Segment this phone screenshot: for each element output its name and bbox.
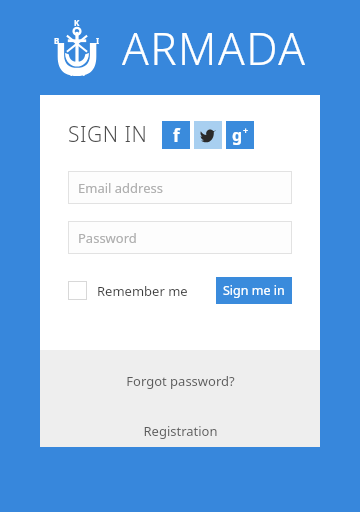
staticText: 1964	[69, 69, 86, 79]
staticText: I	[96, 35, 100, 46]
staticText: SIGN IN	[68, 120, 148, 149]
button[interactable]: Sign me in	[216, 277, 292, 304]
staticText: Registration	[143, 422, 218, 440]
button[interactable]: Sign in with Twitter	[194, 121, 222, 149]
staticText: Remember me	[97, 282, 188, 300]
button[interactable]: Password	[68, 221, 292, 254]
staticText: g	[232, 124, 243, 146]
staticText: Forgot password?	[126, 372, 235, 390]
staticText: ARMADA	[122, 18, 307, 78]
button[interactable]: Email address	[68, 171, 292, 204]
staticText: K	[74, 17, 80, 28]
staticText: +	[243, 124, 249, 136]
staticText: B	[54, 35, 60, 46]
button[interactable]: Registration	[40, 418, 320, 444]
button[interactable]: Sign in with Google Plus	[226, 121, 254, 149]
button[interactable]: Forgot password?	[40, 368, 320, 394]
staticText: f	[173, 124, 180, 147]
staticText: Sign me in	[223, 282, 285, 299]
staticText: Password	[78, 229, 137, 247]
button[interactable]: Sign in with Facebook	[162, 121, 190, 149]
staticText: Email address	[78, 179, 163, 197]
button[interactable]: Remember me	[68, 281, 188, 300]
